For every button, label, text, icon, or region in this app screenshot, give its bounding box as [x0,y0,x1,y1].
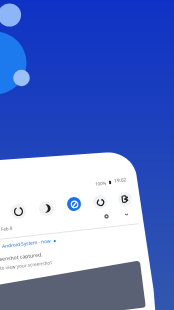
staticText: Screenshot captured. [0,251,43,264]
staticText: Feb 8 [1,225,13,232]
button[interactable]: Dark theme [38,200,55,217]
button[interactable]: Settings [102,212,110,220]
staticText: Tap to view your screenshot [0,259,53,272]
button[interactable]: Auto rotate [10,203,27,220]
button[interactable]: Screen cast [117,191,133,207]
button[interactable]: Do not disturb [66,196,82,212]
button[interactable]: Auto rotate [92,194,108,210]
staticText: Android System · now [2,238,51,250]
button[interactable]: Expand [122,210,130,218]
staticText: 19:02 [114,176,127,185]
staticText: 100% [95,179,107,187]
